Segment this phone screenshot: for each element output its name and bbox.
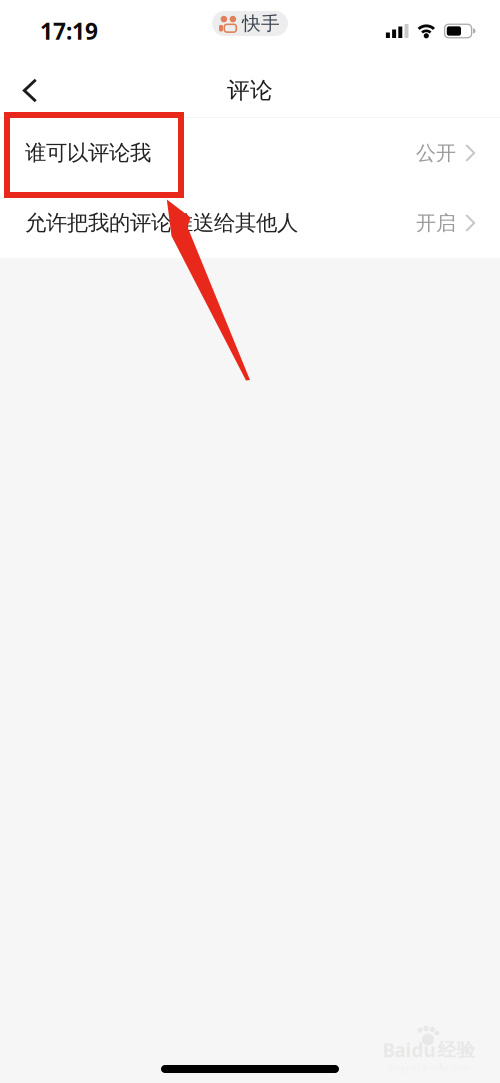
staticText: 经验 [437,1038,475,1061]
staticText: 评论 [227,77,273,104]
button[interactable]: 允许把我的评论推送给其他人 [0,188,500,258]
staticText: 17:19 [40,16,98,46]
staticText: 谁可以评论我 [25,140,151,166]
staticText: 公开 [416,141,456,165]
staticText: 允许把我的评论推送给其他人 [25,210,298,236]
staticText: Baidu [382,1038,435,1062]
staticText: 开启 [416,211,456,235]
button[interactable]: Back [0,64,55,117]
button[interactable]: 谁可以评论我 [0,118,500,188]
staticText: 快手 [242,12,280,35]
